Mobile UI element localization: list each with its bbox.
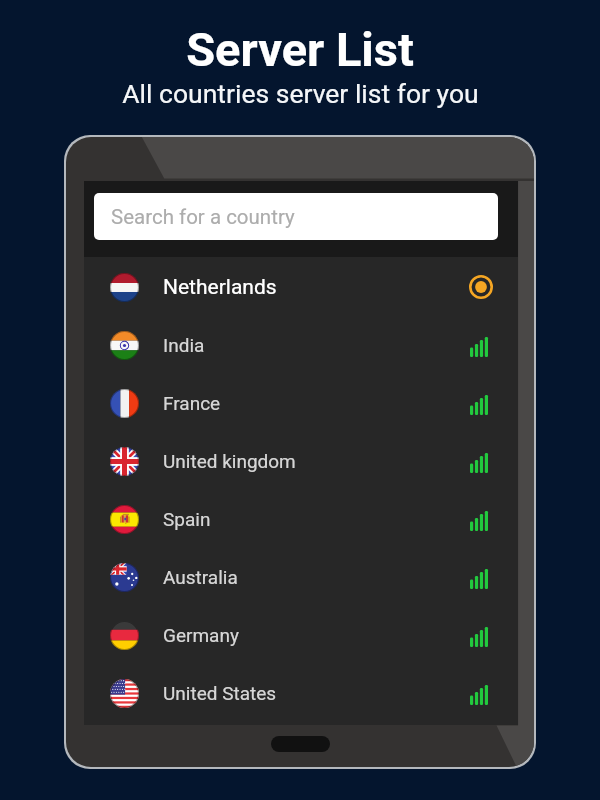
- button[interactable]: Signal strength: [469, 507, 493, 531]
- button[interactable]: Netherlands: [84, 258, 518, 316]
- staticText: Australia: [163, 566, 238, 588]
- button[interactable]: India: [84, 316, 518, 374]
- staticText: Server List: [186, 22, 414, 77]
- button[interactable]: Signal strength: [469, 623, 493, 647]
- staticText: India: [163, 334, 205, 356]
- staticText: Germany: [163, 624, 239, 646]
- staticText: United States: [163, 682, 277, 704]
- staticText: Netherlands: [163, 275, 277, 300]
- button[interactable]: Australia: [84, 548, 518, 606]
- button[interactable]: United States: [84, 664, 518, 722]
- staticText: All countries server list for you: [122, 78, 479, 109]
- button[interactable]: France: [84, 374, 518, 432]
- button[interactable]: Signal strength: [469, 391, 493, 415]
- button[interactable]: Germany: [84, 606, 518, 664]
- button[interactable]: Home: [271, 736, 330, 752]
- button[interactable]: United kingdom: [84, 432, 518, 490]
- button[interactable]: Signal strength: [469, 449, 493, 473]
- staticText: Spain: [163, 508, 211, 530]
- button[interactable]: Spain: [84, 490, 518, 548]
- button[interactable]: Signal strength: [469, 333, 493, 357]
- staticText: France: [163, 392, 221, 414]
- button[interactable]: Selected server: [469, 275, 493, 299]
- button[interactable]: Search for a country: [94, 193, 498, 240]
- button[interactable]: Signal strength: [469, 565, 493, 589]
- staticText: United kingdom: [163, 450, 296, 472]
- button[interactable]: Signal strength: [469, 681, 493, 705]
- staticText: Search for a country: [111, 205, 295, 229]
